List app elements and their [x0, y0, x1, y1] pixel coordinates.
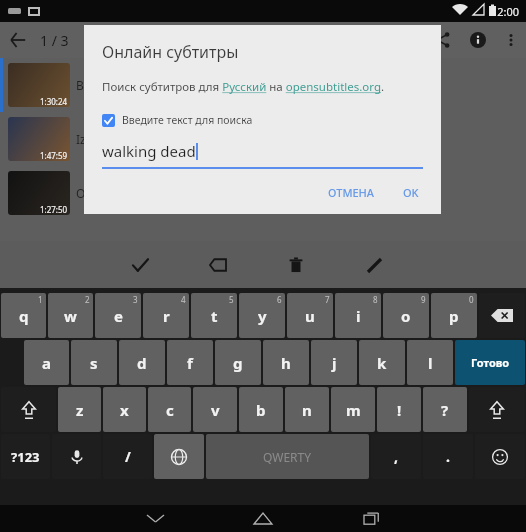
staticText: ?123 [11, 448, 40, 466]
button[interactable]: f [167, 340, 213, 385]
staticText: k [377, 353, 387, 373]
staticText: s [90, 353, 98, 373]
staticText: , [394, 447, 398, 466]
staticText: OK [403, 185, 419, 200]
button[interactable]: 4 [143, 293, 189, 338]
staticText: 6 [277, 294, 282, 305]
staticText: 5 [229, 294, 234, 305]
staticText: e [114, 306, 123, 326]
staticText: r [163, 306, 170, 326]
button[interactable]: s [71, 340, 117, 385]
button[interactable]: j [311, 340, 357, 385]
button[interactable]: Change language [154, 434, 204, 479]
staticText: 3 [133, 294, 138, 305]
button[interactable]: Confirm [118, 243, 162, 287]
button[interactable]: OK [395, 181, 427, 204]
button[interactable]: l [407, 340, 453, 385]
staticText: walking dead [102, 141, 196, 161]
button[interactable]: Back [0, 22, 36, 58]
staticText: 1 / 3 [40, 31, 69, 50]
button[interactable]: Backspace [479, 293, 525, 338]
button[interactable]: ! [377, 387, 421, 432]
button[interactable]: Share [424, 22, 460, 58]
button[interactable]: 0 [431, 293, 477, 338]
button[interactable]: 1 [1, 293, 46, 338]
button[interactable]: d [119, 340, 165, 385]
staticText: Ost [76, 185, 96, 201]
button[interactable]: Shift [1, 387, 56, 432]
staticText: d [137, 353, 147, 373]
staticText: Готово [471, 355, 510, 370]
button[interactable]: 2 [48, 293, 93, 338]
staticText: 1:27:50 [40, 204, 68, 215]
staticText: . [446, 447, 450, 466]
staticText: x [120, 400, 129, 420]
button[interactable]: More options [496, 25, 526, 55]
button[interactable]: h [263, 340, 309, 385]
staticText: g [233, 353, 243, 373]
staticText: z [76, 400, 84, 420]
staticText: Онлайн субтитры [102, 41, 239, 63]
staticText: 1:47:59 [40, 150, 68, 161]
button[interactable]: Введите текст для поиска [102, 113, 253, 127]
staticText: Blu [76, 77, 95, 93]
staticText: ОТМЕНА [328, 185, 375, 200]
button[interactable]: 6 [239, 293, 285, 338]
staticText: 8 [373, 294, 378, 305]
staticText: o [401, 306, 411, 326]
staticText: t [211, 306, 218, 326]
button[interactable]: ?123 [1, 434, 50, 479]
staticText: QWERTY [263, 449, 312, 465]
button[interactable]: Emoji [475, 434, 525, 479]
staticText: m [346, 400, 361, 420]
staticText: Поиск субтитров для Русский на opensubti… [102, 79, 385, 95]
button[interactable]: Tag [196, 243, 240, 287]
button[interactable]: Info [460, 22, 496, 58]
staticText: l [428, 353, 433, 373]
staticText: h [281, 353, 291, 373]
staticText: p [449, 306, 459, 326]
button[interactable]: , [371, 434, 421, 479]
button[interactable]: Home [232, 505, 294, 532]
staticText: a [42, 353, 51, 373]
staticText: j [332, 353, 337, 373]
button[interactable]: b [239, 387, 283, 432]
button[interactable]: Voice input [52, 434, 101, 479]
button[interactable]: Shift [469, 387, 525, 432]
button[interactable]: a [24, 340, 69, 385]
button[interactable]: Recents [340, 505, 402, 532]
button[interactable]: m [331, 387, 375, 432]
button[interactable]: Готово [455, 340, 525, 385]
button[interactable]: 9 [383, 293, 429, 338]
button[interactable]: . [423, 434, 473, 479]
button[interactable]: Hide keyboard [124, 505, 186, 532]
staticText: q [19, 306, 29, 326]
button[interactable]: Play [388, 22, 424, 58]
staticText: / [125, 447, 131, 466]
button[interactable]: n [285, 387, 329, 432]
staticText: y [258, 306, 267, 326]
staticText: 9 [421, 294, 426, 305]
button[interactable]: 5 [191, 293, 237, 338]
button[interactable]: Delete [274, 243, 318, 287]
button[interactable]: Space [206, 434, 369, 479]
button[interactable]: k [359, 340, 405, 385]
staticText: 12:00 [491, 4, 520, 19]
staticText: f [187, 353, 193, 373]
button[interactable]: z [58, 387, 101, 432]
staticText: ! [397, 400, 402, 420]
button[interactable]: v [193, 387, 237, 432]
button[interactable]: Edit [352, 243, 396, 287]
staticText: i [356, 306, 361, 326]
button[interactable]: x [103, 387, 146, 432]
button[interactable]: 8 [335, 293, 381, 338]
button[interactable]: c [148, 387, 191, 432]
button[interactable]: / [103, 434, 152, 479]
button[interactable]: ? [423, 387, 467, 432]
button[interactable]: 3 [95, 293, 141, 338]
staticText: 2 [85, 294, 90, 305]
button[interactable]: 7 [287, 293, 333, 338]
staticText: 1 [38, 294, 43, 305]
button[interactable]: g [215, 340, 261, 385]
button[interactable]: ОТМЕНА [320, 181, 383, 204]
